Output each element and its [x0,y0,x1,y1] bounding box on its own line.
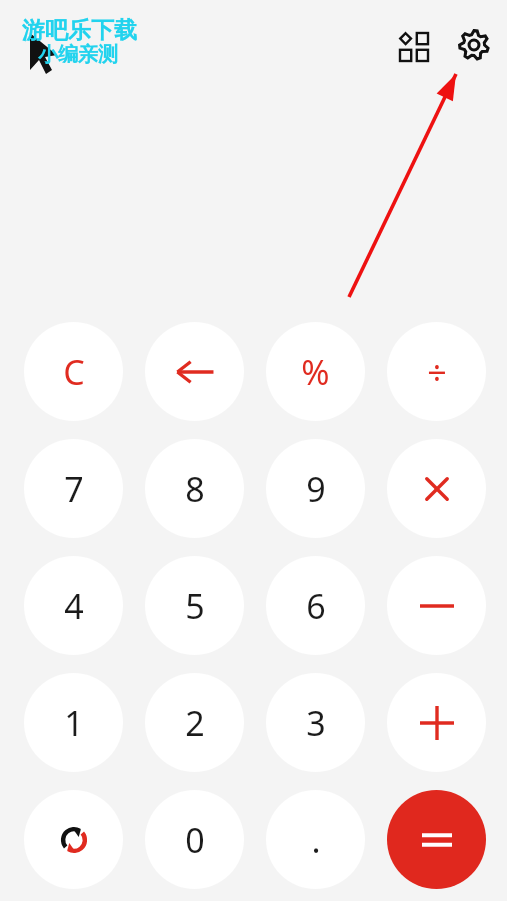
button[interactable]: 4 [24,556,123,655]
staticText: C [63,349,85,395]
button[interactable]: % [266,322,365,421]
button[interactable]: Settings [450,21,498,69]
button[interactable]: C [24,322,123,421]
button[interactable]: 6 [266,556,365,655]
staticText: 游吧乐下载 [22,16,137,45]
button[interactable]: Convert [24,790,123,889]
staticText: 9 [306,466,326,512]
staticText: 2 [185,700,205,746]
staticText: 5 [185,583,205,629]
button[interactable]: 2 [145,673,244,772]
button[interactable]: 5 [145,556,244,655]
button[interactable]: Add [387,673,486,772]
staticText: 7 [64,466,84,512]
button[interactable]: 8 [145,439,244,538]
button[interactable]: Backspace [145,322,244,421]
button[interactable]: 7 [24,439,123,538]
button[interactable]: 0 [145,790,244,889]
staticText: . [311,817,321,863]
staticText: 4 [64,583,84,629]
staticText: 小编亲测 [38,42,118,67]
button[interactable]: 1 [24,673,123,772]
button[interactable]: 9 [266,439,365,538]
staticText: 0 [185,817,205,863]
staticText: 1 [64,700,84,746]
button[interactable]: . [266,790,365,889]
button[interactable]: ÷ [387,322,486,421]
button[interactable]: Multiply [387,439,486,538]
staticText: 8 [185,466,205,512]
staticText: 6 [306,583,326,629]
staticText: 3 [306,700,326,746]
staticText: ÷ [427,349,447,395]
button[interactable]: Apps [390,23,438,71]
button[interactable]: 3 [266,673,365,772]
button[interactable]: Subtract [387,556,486,655]
button[interactable]: Equals [387,790,486,889]
staticText: % [301,349,330,395]
